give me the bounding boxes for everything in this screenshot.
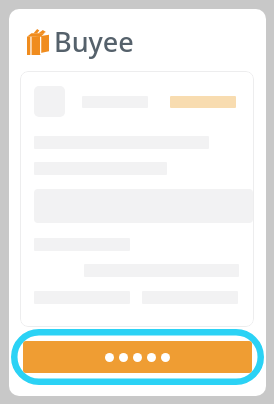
button[interactable]: Continue bbox=[10, 328, 265, 386]
staticText: Buyee bbox=[54, 23, 134, 60]
button[interactable]: Buyee bbox=[27, 23, 134, 60]
